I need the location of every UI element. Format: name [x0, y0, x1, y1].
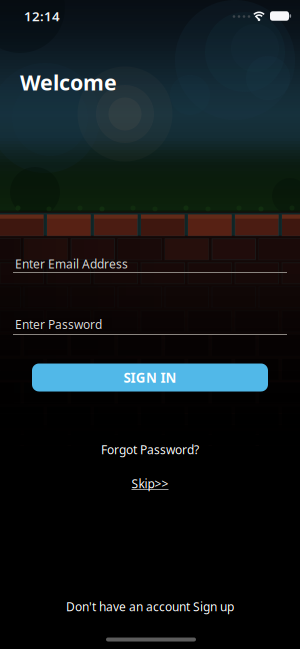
- staticText: Enter Password: [15, 316, 102, 332]
- staticText: Welcome: [20, 68, 117, 96]
- button[interactable]: SIGN IN: [32, 363, 268, 391]
- button[interactable]: Enter Password: [13, 313, 287, 337]
- staticText: Skip>>: [131, 475, 168, 491]
- staticText: 12:14: [24, 7, 60, 25]
- button[interactable]: Don't have an account Sign up: [62, 594, 238, 618]
- button[interactable]: Skip>>: [127, 471, 172, 495]
- staticText: Forgot Password?: [101, 441, 199, 457]
- staticText: Don't have an account Sign up: [66, 598, 234, 614]
- button[interactable]: Enter Email Address: [13, 251, 287, 275]
- staticText: SIGN IN: [123, 369, 177, 386]
- button[interactable]: Forgot Password?: [97, 437, 203, 461]
- staticText: Enter Email Address: [15, 256, 128, 272]
